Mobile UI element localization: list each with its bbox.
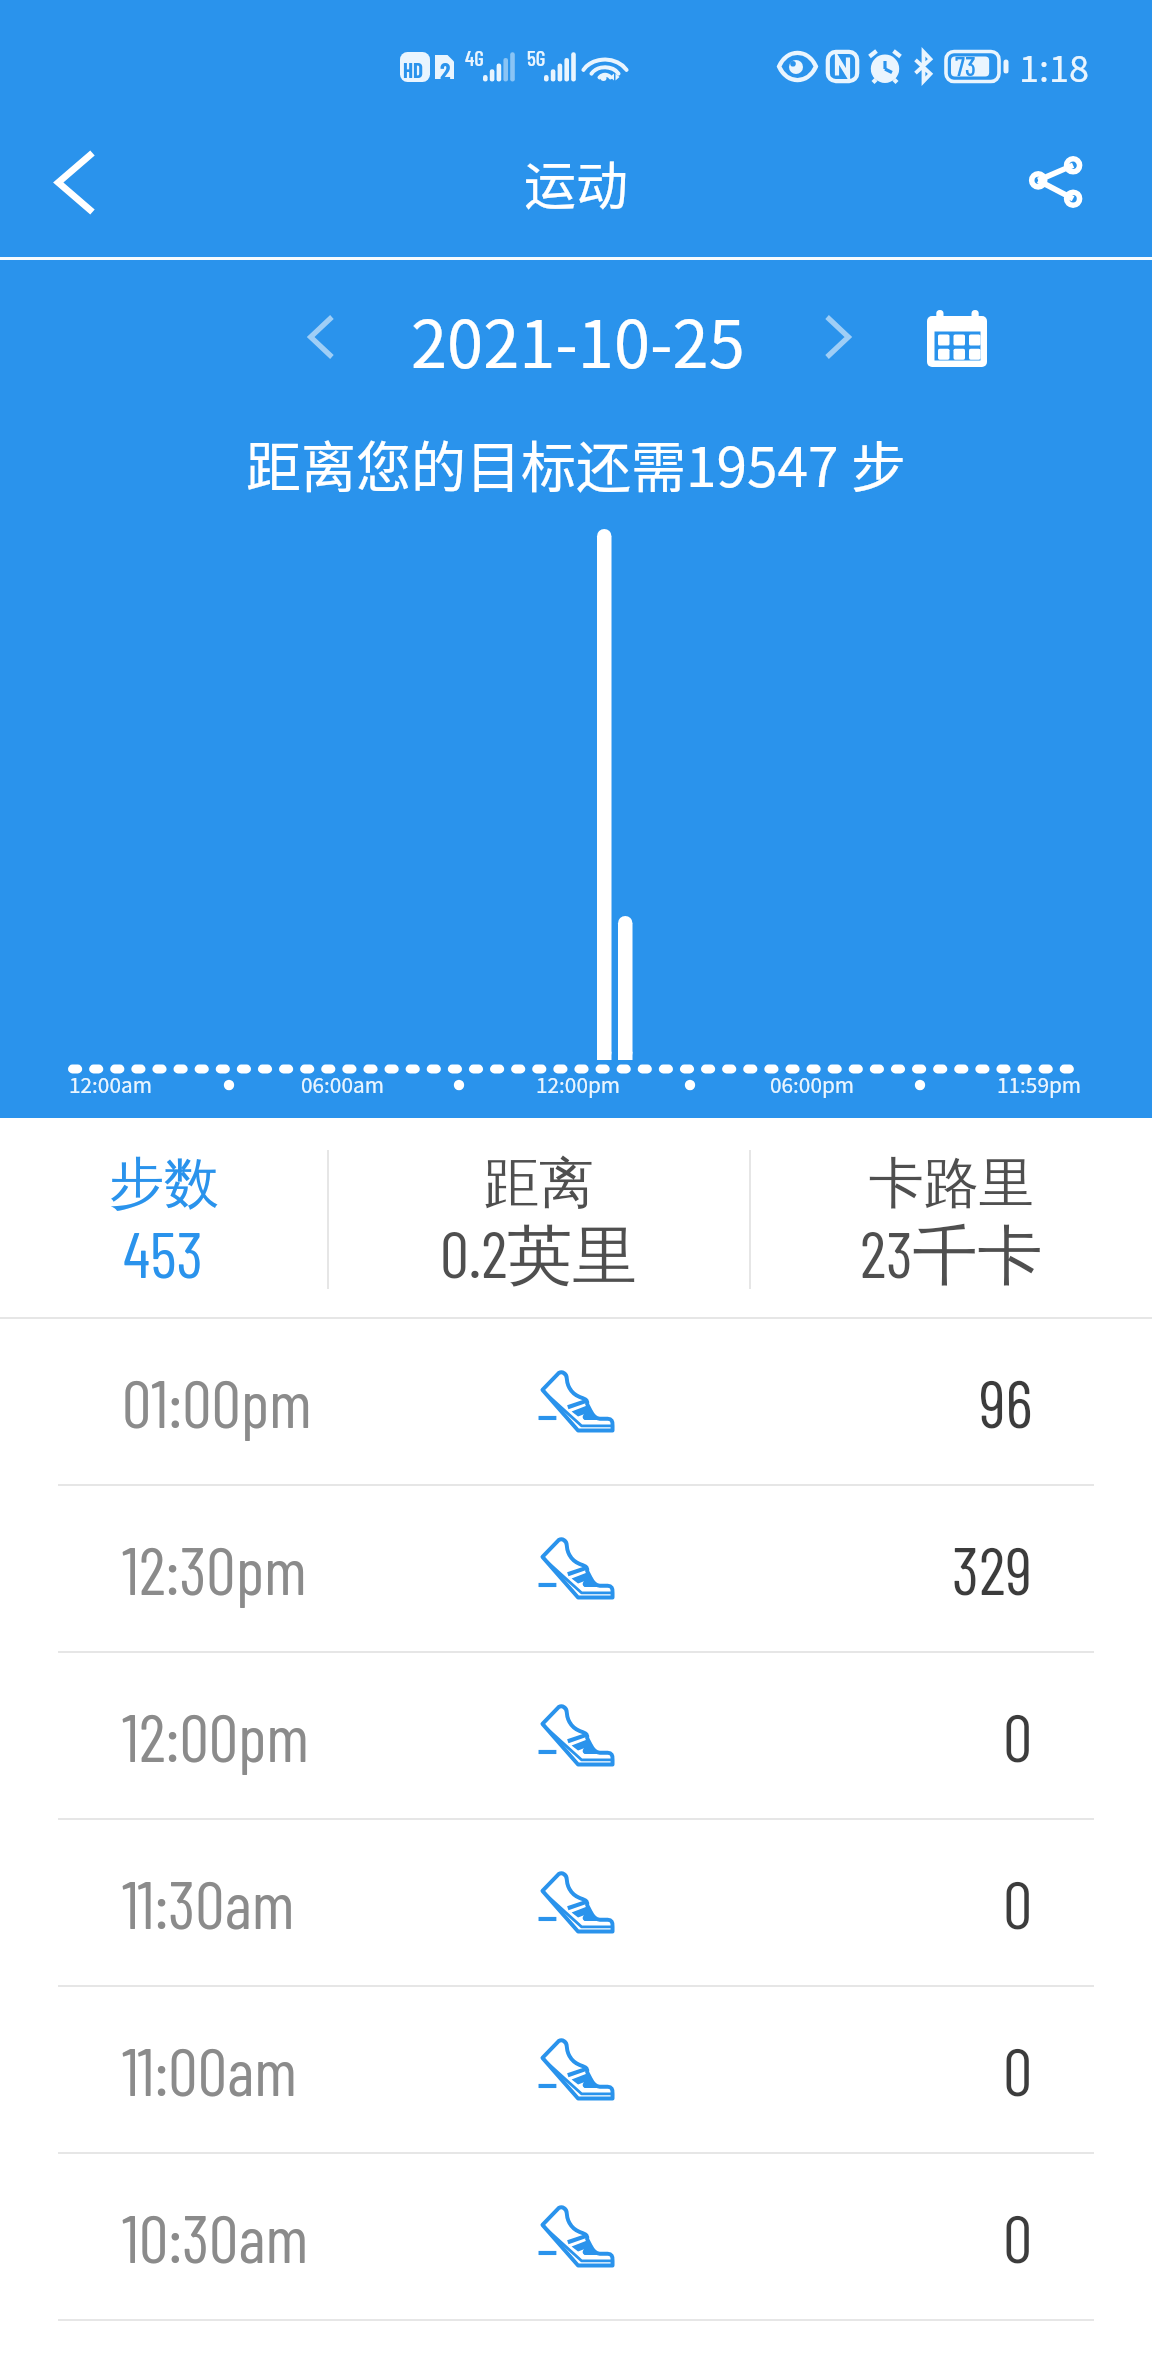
staticText: 11:00am	[122, 2030, 297, 2109]
staticText: 0	[1003, 2030, 1033, 2109]
staticText: HD	[403, 57, 424, 82]
staticText: 4G	[465, 45, 484, 70]
staticText: 2021-10-25	[411, 293, 745, 387]
staticText: 距离您的目标还需19547 步	[246, 423, 906, 503]
staticText: 10:30am	[122, 2197, 309, 2276]
staticText: 5G	[527, 45, 546, 70]
button[interactable]: Share	[1002, 108, 1152, 257]
staticText: 1:18	[1019, 40, 1089, 92]
button[interactable]: 步数	[0, 1118, 327, 1317]
staticText: 0.2英里	[440, 1213, 638, 1297]
staticText: 距离	[484, 1149, 594, 1218]
button[interactable]: 距离	[329, 1118, 749, 1317]
button[interactable]: 12:00pm	[0, 1653, 1152, 1818]
button[interactable]: 10:30am	[0, 2154, 1152, 2319]
staticText: 卡路里	[869, 1149, 1034, 1218]
button[interactable]: Calendar	[917, 290, 997, 370]
button[interactable]: Previous day	[281, 293, 361, 381]
button[interactable]: Back	[0, 108, 150, 257]
staticText: 06:00pm	[770, 1069, 855, 1099]
staticText: 453	[123, 1213, 204, 1291]
staticText: 23千卡	[860, 1213, 1043, 1297]
staticText: 12:30pm	[122, 1529, 307, 1608]
staticText: 12:00pm	[122, 1696, 310, 1775]
staticText: 运动	[524, 145, 629, 220]
button[interactable]: 01:00pm	[0, 1319, 1152, 1484]
staticText: 0	[1003, 1863, 1033, 1942]
button[interactable]: 11:30am	[0, 1820, 1152, 1985]
staticText: 12:00pm	[536, 1069, 621, 1099]
staticText: 96	[979, 1362, 1033, 1441]
staticText: 2	[440, 56, 451, 85]
staticText: 11:30am	[122, 1863, 295, 1942]
staticText: 0	[1003, 2197, 1033, 2276]
button[interactable]: 11:00am	[0, 1987, 1152, 2152]
staticText: 01:00pm	[122, 1362, 312, 1441]
staticText: 329	[952, 1529, 1033, 1608]
staticText: 步数	[109, 1149, 219, 1218]
staticText: 0	[1003, 1696, 1033, 1775]
button[interactable]: 12:30pm	[0, 1486, 1152, 1651]
staticText: 11:59pm	[997, 1069, 1082, 1099]
button[interactable]: 卡路里	[751, 1118, 1152, 1317]
staticText: 73	[955, 50, 976, 81]
staticText: 12:00am	[69, 1069, 152, 1099]
button[interactable]: Next day	[798, 293, 878, 381]
staticText: 06:00am	[301, 1069, 384, 1099]
